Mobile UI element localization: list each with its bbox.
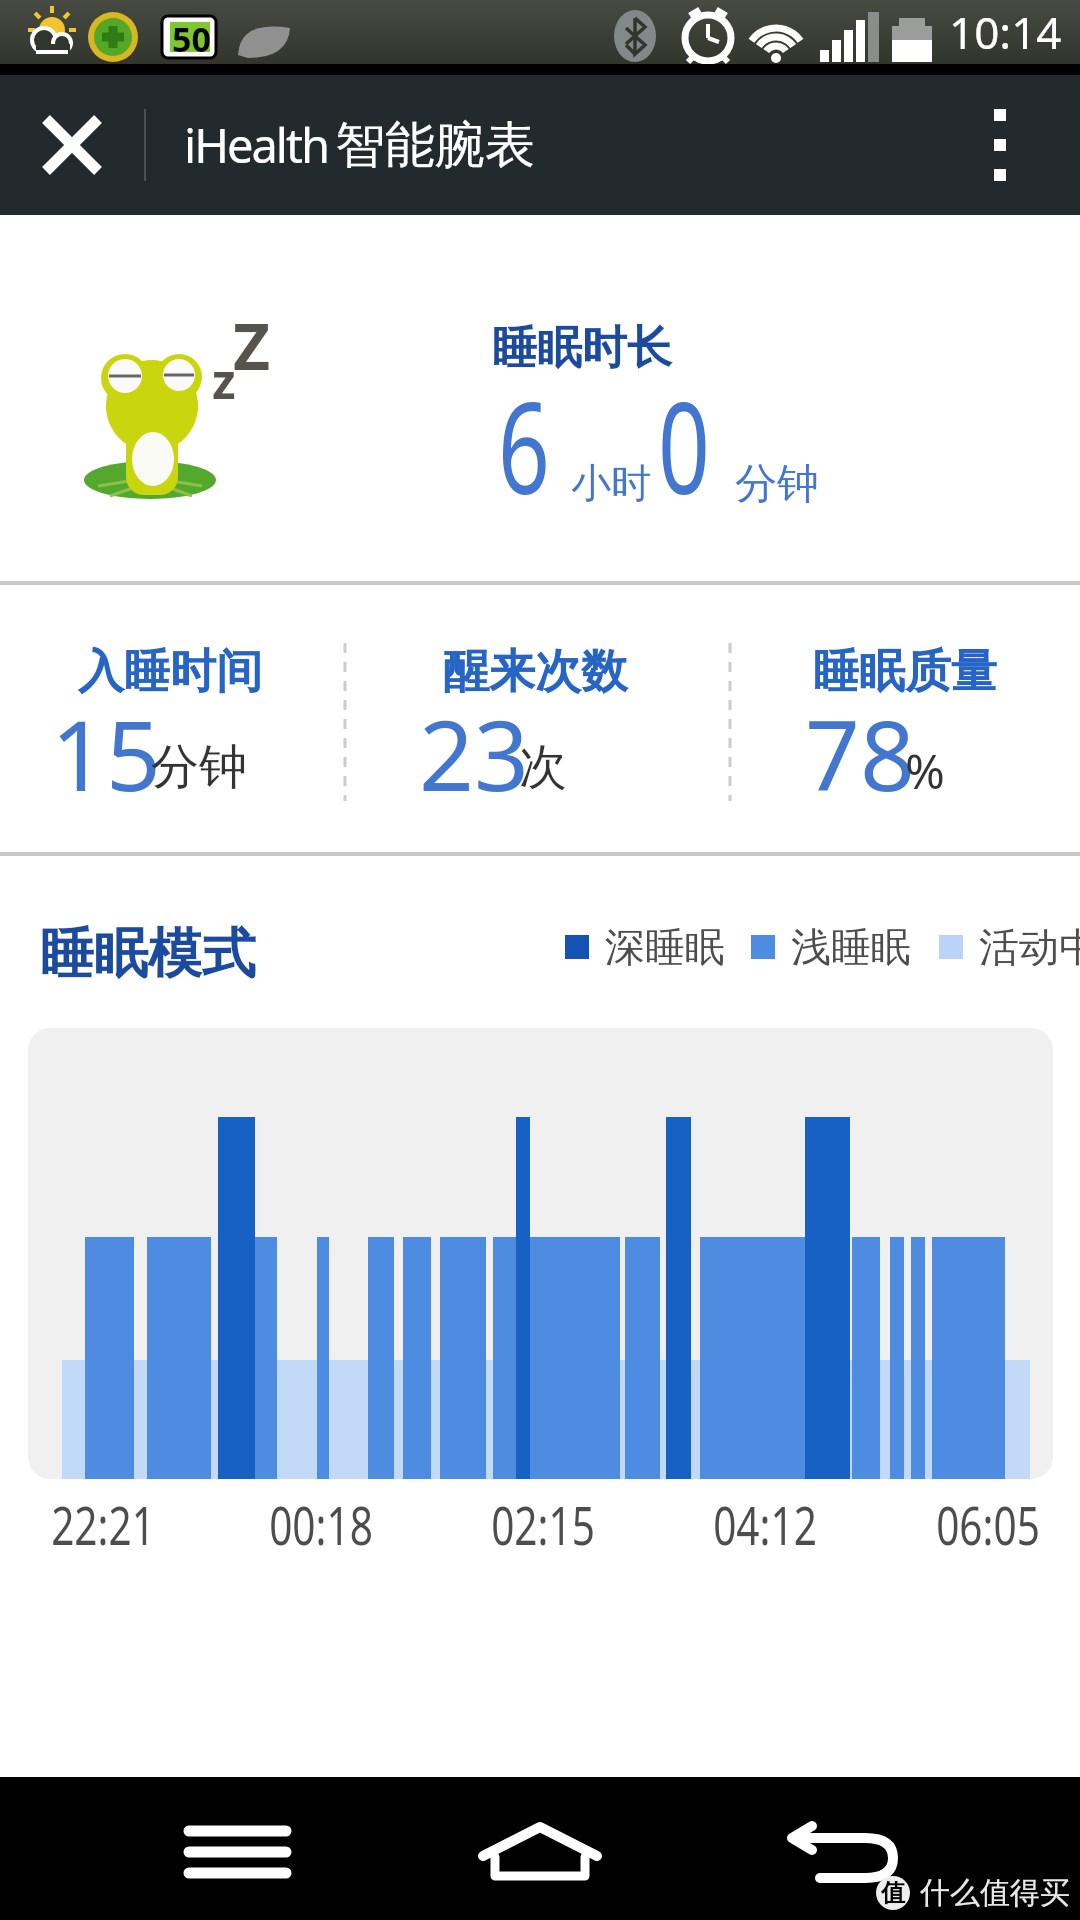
staticText: 分钟 xyxy=(735,458,819,511)
staticText: 00:18 xyxy=(266,1489,376,1560)
staticText: iHealth xyxy=(184,113,328,177)
staticText: 23 xyxy=(419,688,529,819)
staticText: 睡眠时长 xyxy=(492,320,672,377)
staticText: 小时 xyxy=(571,458,651,508)
staticText: 22:21 xyxy=(48,1489,158,1560)
button[interactable] xyxy=(766,1802,921,1902)
staticText: 0 xyxy=(658,359,711,531)
staticText: 6 xyxy=(498,359,551,531)
staticText: 10:14 xyxy=(949,2,1062,62)
staticText: 浅睡眠 xyxy=(791,922,911,972)
button[interactable] xyxy=(160,1802,315,1902)
staticText: % xyxy=(905,738,945,803)
staticText: 02:15 xyxy=(488,1489,598,1560)
button[interactable]: 深睡眠 xyxy=(565,922,725,972)
button[interactable]: 活动中 xyxy=(939,922,1080,972)
staticText: 智能腕表 xyxy=(335,114,535,177)
button[interactable]: 浅睡眠 xyxy=(751,922,911,972)
button[interactable] xyxy=(28,1028,1053,1479)
staticText: 什么值得买 xyxy=(920,1874,1070,1912)
button[interactable]: 入睡时间 xyxy=(0,643,340,832)
staticText: 78 xyxy=(805,688,915,819)
staticText: 睡眠模式 xyxy=(40,920,256,988)
button[interactable] xyxy=(980,95,1020,195)
staticText: 值 xyxy=(881,1878,905,1908)
staticText: 入睡时间 xyxy=(78,643,262,701)
staticText: 50 xyxy=(172,16,211,62)
staticText: 次 xyxy=(519,737,567,797)
staticText: 深睡眠 xyxy=(605,922,725,972)
staticText: Z xyxy=(233,302,271,389)
staticText: 活动中 xyxy=(979,922,1080,972)
staticText: z xyxy=(212,348,236,413)
staticText: 醒来次数 xyxy=(443,643,627,701)
staticText: 15 xyxy=(51,688,161,819)
staticText: 06:05 xyxy=(933,1489,1043,1560)
button[interactable] xyxy=(30,103,114,187)
staticText: 04:12 xyxy=(710,1489,820,1560)
button[interactable] xyxy=(462,1802,617,1902)
button[interactable]: 醒来次数 xyxy=(340,643,730,832)
button[interactable]: 睡眠质量 xyxy=(730,643,1080,832)
staticText: 睡眠质量 xyxy=(813,643,997,701)
staticText: 分钟 xyxy=(151,737,247,797)
